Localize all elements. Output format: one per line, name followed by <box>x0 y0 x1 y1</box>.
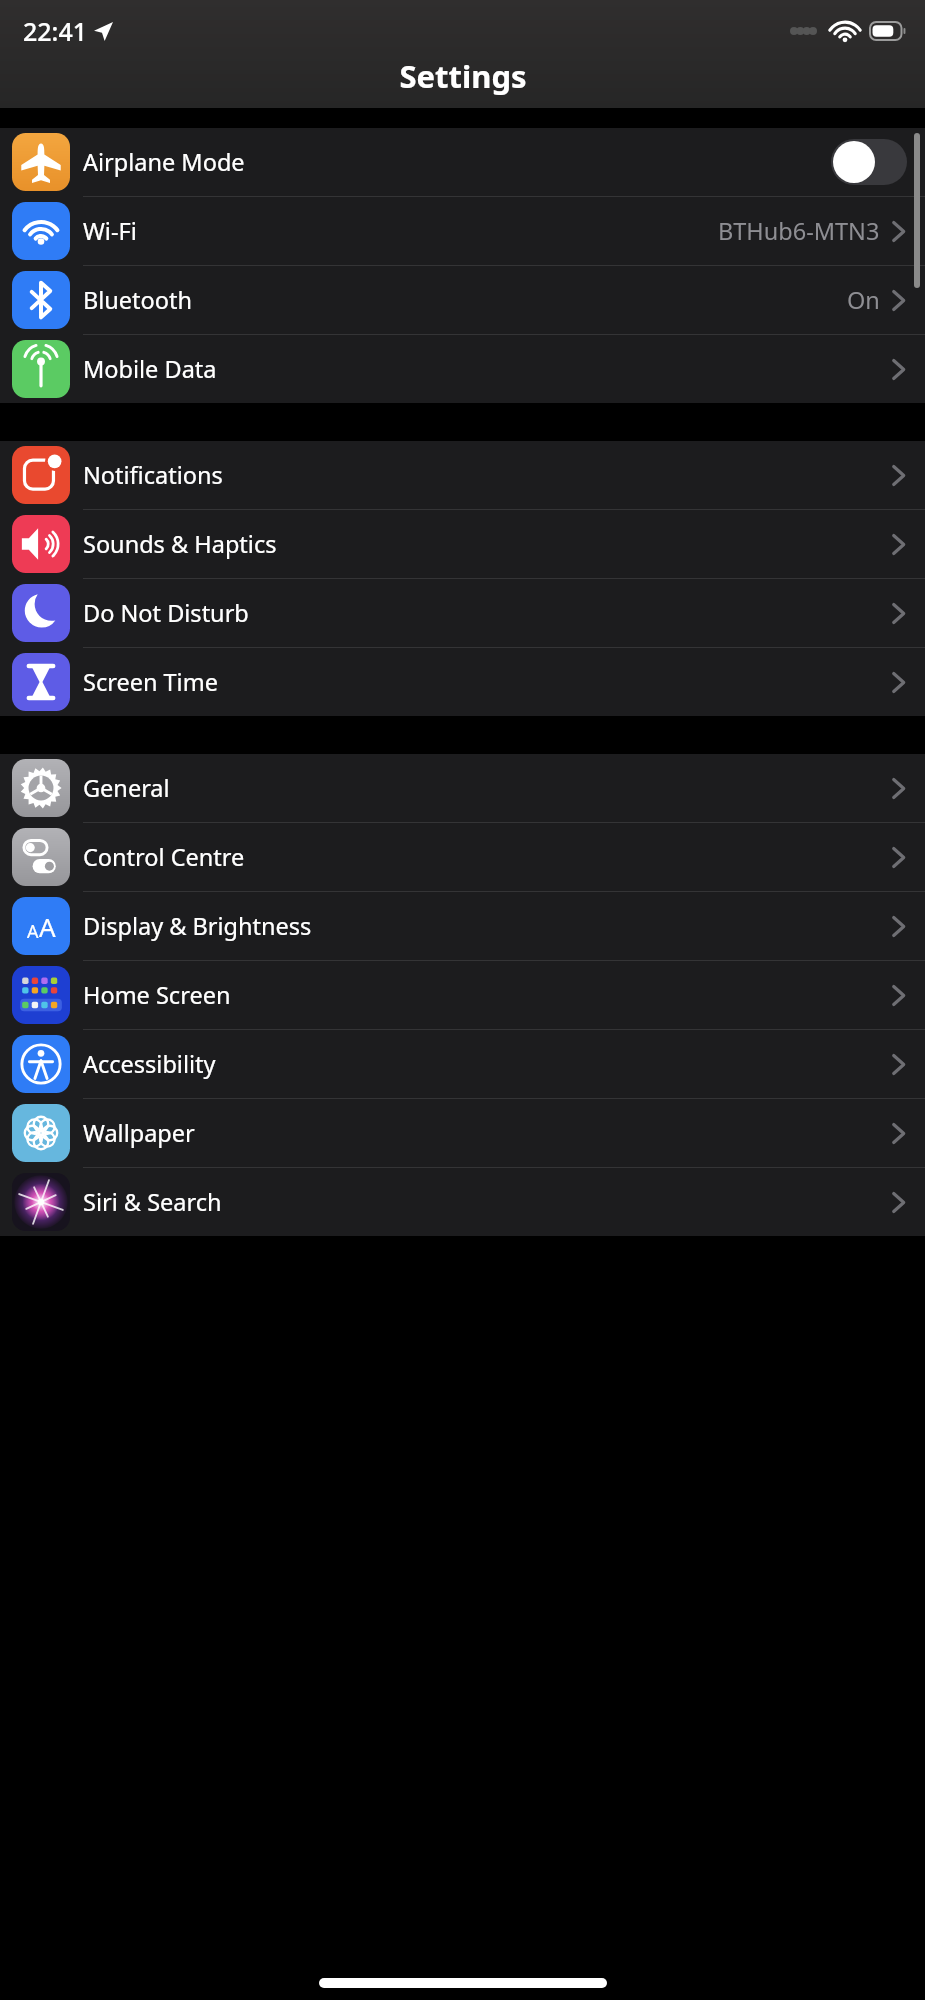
button[interactable]: Accessibility <box>0 1030 925 1099</box>
button[interactable]: Home Screen <box>0 961 925 1030</box>
button[interactable]: General <box>0 754 925 823</box>
button[interactable]: Control Centre <box>0 823 925 892</box>
staticText: Sounds & Haptics <box>83 528 277 560</box>
staticText: BTHub6-MTN3 <box>718 215 880 247</box>
button[interactable]: Notifications <box>0 441 925 510</box>
button[interactable]: Sounds & Haptics <box>0 510 925 579</box>
staticText: Wi-Fi <box>83 215 137 247</box>
button[interactable]: Screen Time <box>0 648 925 716</box>
button[interactable]: A <box>0 892 925 961</box>
staticText: On <box>847 284 880 316</box>
button[interactable]: Mobile Data <box>0 335 925 403</box>
staticText: A <box>39 909 56 944</box>
button[interactable]: Airplane Mode <box>0 128 925 197</box>
staticText: 22:41 <box>23 14 88 48</box>
button[interactable]: Do Not Disturb <box>0 579 925 648</box>
staticText: Bluetooth <box>83 284 193 316</box>
staticText: Display & Brightness <box>83 910 312 942</box>
staticText: Do Not Disturb <box>83 597 249 629</box>
staticText: Settings <box>399 55 527 97</box>
staticText: Wallpaper <box>83 1117 195 1149</box>
staticText: Airplane Mode <box>83 146 245 178</box>
button[interactable]: Siri & Search <box>0 1168 925 1236</box>
button[interactable]: Bluetooth <box>0 266 925 335</box>
staticText: Accessibility <box>83 1048 216 1080</box>
staticText: Siri & Search <box>83 1186 222 1218</box>
staticText: A <box>27 919 39 944</box>
staticText: Notifications <box>83 459 223 491</box>
staticText: Screen Time <box>83 666 218 698</box>
staticText: Mobile Data <box>83 353 217 385</box>
button[interactable]: Wallpaper <box>0 1099 925 1168</box>
button[interactable]: Wi-Fi <box>0 197 925 266</box>
staticText: Home Screen <box>83 979 231 1011</box>
staticText: Control Centre <box>83 841 245 873</box>
button[interactable]: Airplane Mode <box>831 139 907 185</box>
staticText: General <box>83 772 170 804</box>
